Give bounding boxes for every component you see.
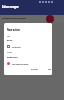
staticText: CANCEL xyxy=(31,67,38,70)
staticText: Recent apps xyxy=(7,55,18,59)
staticText: Long press xyxy=(12,46,21,48)
staticText: More actions and settings xyxy=(12,63,29,65)
button[interactable]: Long press xyxy=(4,44,52,49)
staticText: BACK xyxy=(7,38,13,42)
staticText: More actions and settings xyxy=(12,63,29,65)
staticText: Key xyxy=(7,35,10,37)
staticText: Recent apps xyxy=(7,55,18,59)
staticText: Key xyxy=(7,35,10,37)
staticText: OK xyxy=(48,67,51,70)
staticText: OK xyxy=(48,67,51,70)
staticText: Long press xyxy=(12,46,21,48)
staticText: Action xyxy=(7,51,12,53)
staticText: Accessibility service is disabled xyxy=(2,17,26,19)
button[interactable]: OK xyxy=(47,66,52,72)
button[interactable]: CANCEL xyxy=(30,66,44,72)
staticText: Buttons remapper xyxy=(2,5,19,8)
staticText: New action xyxy=(7,27,21,31)
staticText: Accessibility service is disabled xyxy=(2,17,26,19)
staticText: Buttons remapper xyxy=(2,5,19,8)
staticText: Action xyxy=(7,51,12,53)
staticText: New action xyxy=(7,27,21,31)
button[interactable]: More actions and settings xyxy=(4,61,52,66)
button[interactable]: Add action xyxy=(46,15,54,23)
staticText: CANCEL xyxy=(31,67,38,70)
staticText: BACK xyxy=(7,38,13,42)
